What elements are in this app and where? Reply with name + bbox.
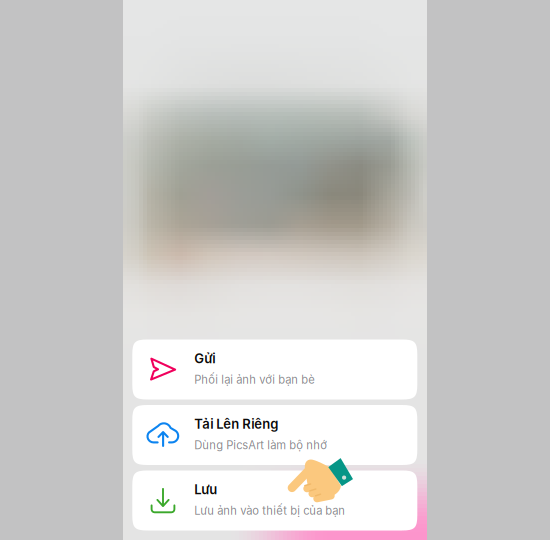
staticText: Tải Lên Riêng [194,416,278,432]
button[interactable]: Tải Lên Riêng [132,405,417,465]
button[interactable]: Gửi [132,339,417,399]
button[interactable]: Lưu [132,470,417,530]
staticText: Gửi [194,351,215,366]
staticText: Lưu [194,482,217,497]
staticText: Dùng PicsArt làm bộ nhớ [194,438,327,452]
staticText: Phối lại ảnh với bạn bè [194,373,315,386]
staticText: Lưu ảnh vào thiết bị của bạn [194,504,345,517]
